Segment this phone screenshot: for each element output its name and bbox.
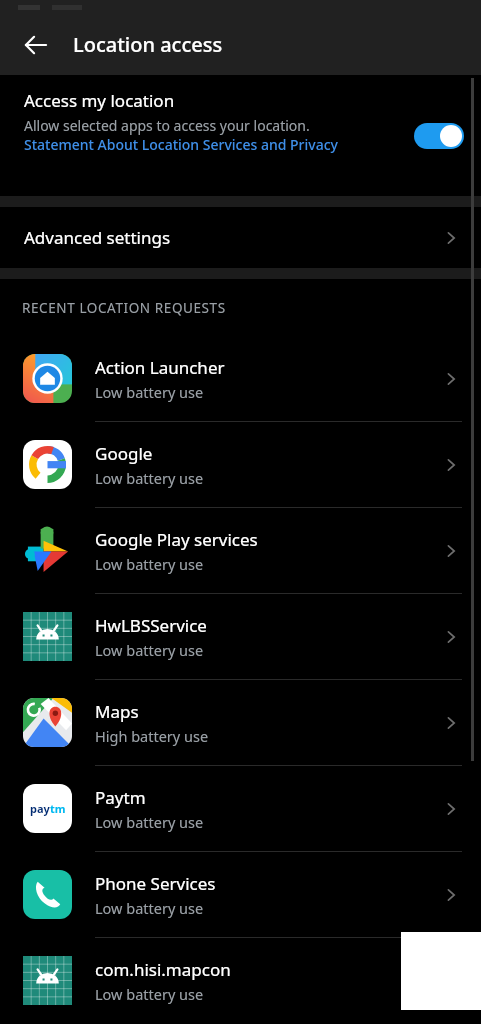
staticText: Low battery use [95, 468, 204, 488]
staticText: Advanced settings [24, 226, 171, 249]
button[interactable]: Google [0, 422, 481, 507]
staticText: Google [95, 442, 153, 465]
staticText: Low battery use [95, 812, 204, 832]
staticText: Low battery use [95, 554, 204, 574]
staticText: RECENT LOCATION REQUESTS [22, 299, 226, 317]
staticText: Access my location [24, 89, 175, 112]
staticText: Google Play services [95, 528, 258, 551]
staticText: pay [30, 801, 50, 816]
staticText: com.hisi.mapcon [95, 958, 231, 981]
button[interactable]: Access my location [0, 75, 481, 196]
button[interactable]: Advanced settings [0, 207, 481, 268]
staticText: Low battery use [95, 984, 204, 1004]
button[interactable]: Google Play services [0, 508, 481, 593]
staticText: HwLBSService [95, 614, 207, 637]
button[interactable]: Maps [0, 680, 481, 765]
staticText: Action Launcher [95, 356, 225, 379]
staticText: Allow selected apps to access your locat… [24, 116, 310, 135]
button[interactable]: Back [10, 19, 62, 71]
staticText: Maps [95, 700, 139, 723]
button[interactable]: Access my location toggle [411, 119, 467, 153]
staticText: Low battery use [95, 898, 204, 918]
staticText: Low battery use [95, 640, 204, 660]
button[interactable]: pay [0, 766, 481, 851]
button[interactable]: com.hisi.mapcon [0, 938, 481, 1023]
staticText: Paytm [95, 786, 146, 809]
button[interactable]: Action Launcher [0, 336, 481, 421]
button[interactable]: Phone Services [0, 852, 481, 937]
button[interactable]: HwLBSService [0, 594, 481, 679]
staticText: Location access [73, 31, 223, 58]
staticText: Phone Services [95, 872, 216, 895]
staticText: Statement About Location Services and Pr… [24, 135, 338, 154]
staticText: High battery use [95, 726, 209, 746]
staticText: Low battery use [95, 382, 204, 402]
staticText: tm [50, 801, 66, 816]
